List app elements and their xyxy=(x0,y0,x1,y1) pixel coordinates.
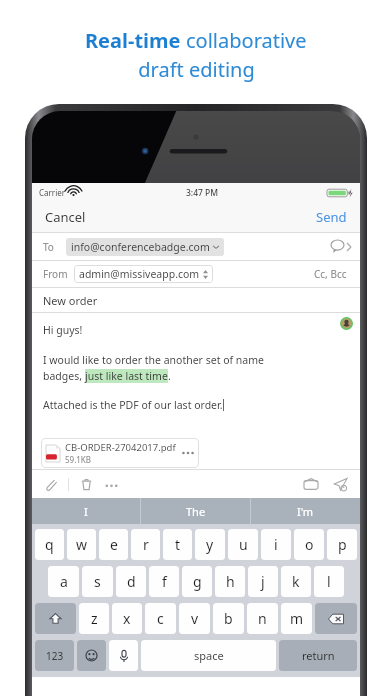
button[interactable]: k xyxy=(281,566,311,597)
staticText: t xyxy=(175,535,181,554)
button[interactable]: 123 xyxy=(35,640,74,671)
button[interactable]: I'm xyxy=(251,498,360,524)
staticText: Hi guys! xyxy=(43,323,83,337)
button[interactable]: f xyxy=(149,566,179,597)
staticText: info@conferencebadge.com xyxy=(71,240,210,254)
staticText: r xyxy=(143,535,149,554)
button[interactable]: I xyxy=(32,498,140,524)
staticText: e xyxy=(110,535,118,554)
button[interactable]: Shift xyxy=(35,603,76,634)
button[interactable]: c xyxy=(145,603,176,634)
button[interactable]: z xyxy=(79,603,109,634)
staticText: u xyxy=(239,535,248,554)
staticText: New order xyxy=(43,293,98,308)
staticText: o xyxy=(305,535,314,554)
staticText: I xyxy=(84,504,88,519)
staticText: k xyxy=(292,572,300,591)
staticText: admin@missiveapp.com xyxy=(79,267,200,281)
staticText: Attached is the PDF of our last order. xyxy=(43,398,223,412)
staticText: a xyxy=(60,572,68,591)
staticText: The xyxy=(186,504,206,519)
staticText: m xyxy=(290,609,304,628)
button[interactable]: e xyxy=(99,529,128,560)
staticText: f xyxy=(162,572,167,591)
button[interactable]: r xyxy=(131,529,160,560)
button[interactable]: p xyxy=(327,529,357,560)
staticText: 59.1KB xyxy=(65,454,92,465)
button[interactable]: Mark as unread xyxy=(302,476,320,492)
button[interactable]: return xyxy=(279,640,357,671)
staticText: badges, xyxy=(43,369,85,383)
button[interactable]: More options xyxy=(103,477,120,492)
button[interactable]: s xyxy=(82,566,113,597)
button[interactable]: t xyxy=(163,529,192,560)
button[interactable]: space xyxy=(141,640,276,671)
staticText: z xyxy=(91,609,98,628)
button[interactable]: Backspace xyxy=(315,603,357,634)
button[interactable]: n xyxy=(247,603,278,634)
staticText: Cc, Bcc xyxy=(314,267,347,281)
button[interactable]: i xyxy=(261,529,291,560)
staticText: just like last time xyxy=(85,369,168,383)
staticText: j xyxy=(261,572,265,591)
staticText: g xyxy=(193,572,202,591)
button[interactable]: Emoji xyxy=(77,640,106,671)
staticText: Real-time xyxy=(85,27,186,54)
staticText: y xyxy=(206,535,214,554)
button[interactable]: Attach file xyxy=(42,476,59,493)
button[interactable]: q xyxy=(35,529,64,560)
staticText: c xyxy=(157,609,164,628)
staticText: Send xyxy=(316,208,347,226)
button[interactable]: info@conferencebadge.com xyxy=(66,238,224,256)
button[interactable]: v xyxy=(179,603,210,634)
staticText: s xyxy=(94,572,101,591)
staticText: collaborative xyxy=(186,27,307,54)
button[interactable]: m xyxy=(281,603,312,634)
button[interactable]: b xyxy=(213,603,244,634)
button[interactable]: g xyxy=(182,566,212,597)
staticText: I'm xyxy=(297,504,314,519)
button[interactable]: CB-ORDER-27042017.pdf xyxy=(41,438,199,468)
staticText: I would like to order the another set of… xyxy=(43,353,264,367)
button[interactable]: Delete draft xyxy=(78,476,95,493)
button[interactable]: w xyxy=(67,529,96,560)
staticText: draft editing xyxy=(138,56,255,83)
staticText: q xyxy=(45,535,54,554)
staticText: . xyxy=(168,369,171,383)
button[interactable]: Send xyxy=(314,206,349,228)
button[interactable]: o xyxy=(294,529,324,560)
button[interactable]: Dictation xyxy=(109,640,138,671)
staticText: x xyxy=(123,609,131,628)
staticText: l xyxy=(327,572,331,591)
staticText: b xyxy=(224,609,233,628)
button[interactable]: admin@missiveapp.com xyxy=(74,265,213,283)
button[interactable]: a xyxy=(48,566,79,597)
staticText: h xyxy=(226,572,235,591)
staticText: p xyxy=(338,535,347,554)
button[interactable]: Send later xyxy=(331,475,350,494)
button[interactable]: h xyxy=(215,566,245,597)
staticText: From xyxy=(43,267,68,281)
staticText: space xyxy=(194,648,224,663)
staticText: v xyxy=(191,609,199,628)
staticText: d xyxy=(127,572,136,591)
button[interactable]: y xyxy=(195,529,225,560)
button[interactable]: The xyxy=(141,498,250,524)
button[interactable]: j xyxy=(248,566,278,597)
button[interactable]: d xyxy=(116,566,146,597)
button[interactable]: Cc, Bcc xyxy=(312,265,349,283)
staticText: n xyxy=(258,609,267,628)
staticText: return xyxy=(302,648,335,663)
staticText: 3:47 PM xyxy=(186,187,219,199)
button[interactable]: x xyxy=(112,603,142,634)
button[interactable]: Comments xyxy=(331,240,351,253)
staticText: CB-ORDER-27042017.pdf xyxy=(65,441,176,454)
button[interactable]: Cancel xyxy=(43,206,88,228)
button[interactable]: l xyxy=(314,566,344,597)
staticText: Carrier xyxy=(39,187,66,198)
button[interactable]: New order xyxy=(32,288,360,312)
staticText: Cancel xyxy=(45,208,86,226)
staticText: i xyxy=(274,535,278,554)
button[interactable]: u xyxy=(228,529,258,560)
staticText: 123 xyxy=(46,649,64,663)
